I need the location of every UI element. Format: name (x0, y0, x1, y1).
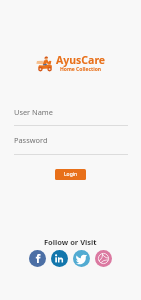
staticText: Password (14, 135, 48, 145)
button[interactable]: Login (55, 169, 86, 180)
staticText: Home Collection (60, 66, 102, 73)
button[interactable]: LinkedIn (51, 250, 68, 267)
staticText: Login (64, 171, 78, 178)
button[interactable]: Facebook (29, 250, 46, 267)
staticText: Follow or Visit (44, 237, 97, 247)
staticText: User Name (14, 107, 53, 117)
button[interactable]: Twitter (73, 250, 90, 267)
button[interactable]: User Name (14, 107, 128, 159)
staticText: AyusCare (56, 53, 106, 67)
button[interactable]: Dribbble (95, 250, 112, 267)
